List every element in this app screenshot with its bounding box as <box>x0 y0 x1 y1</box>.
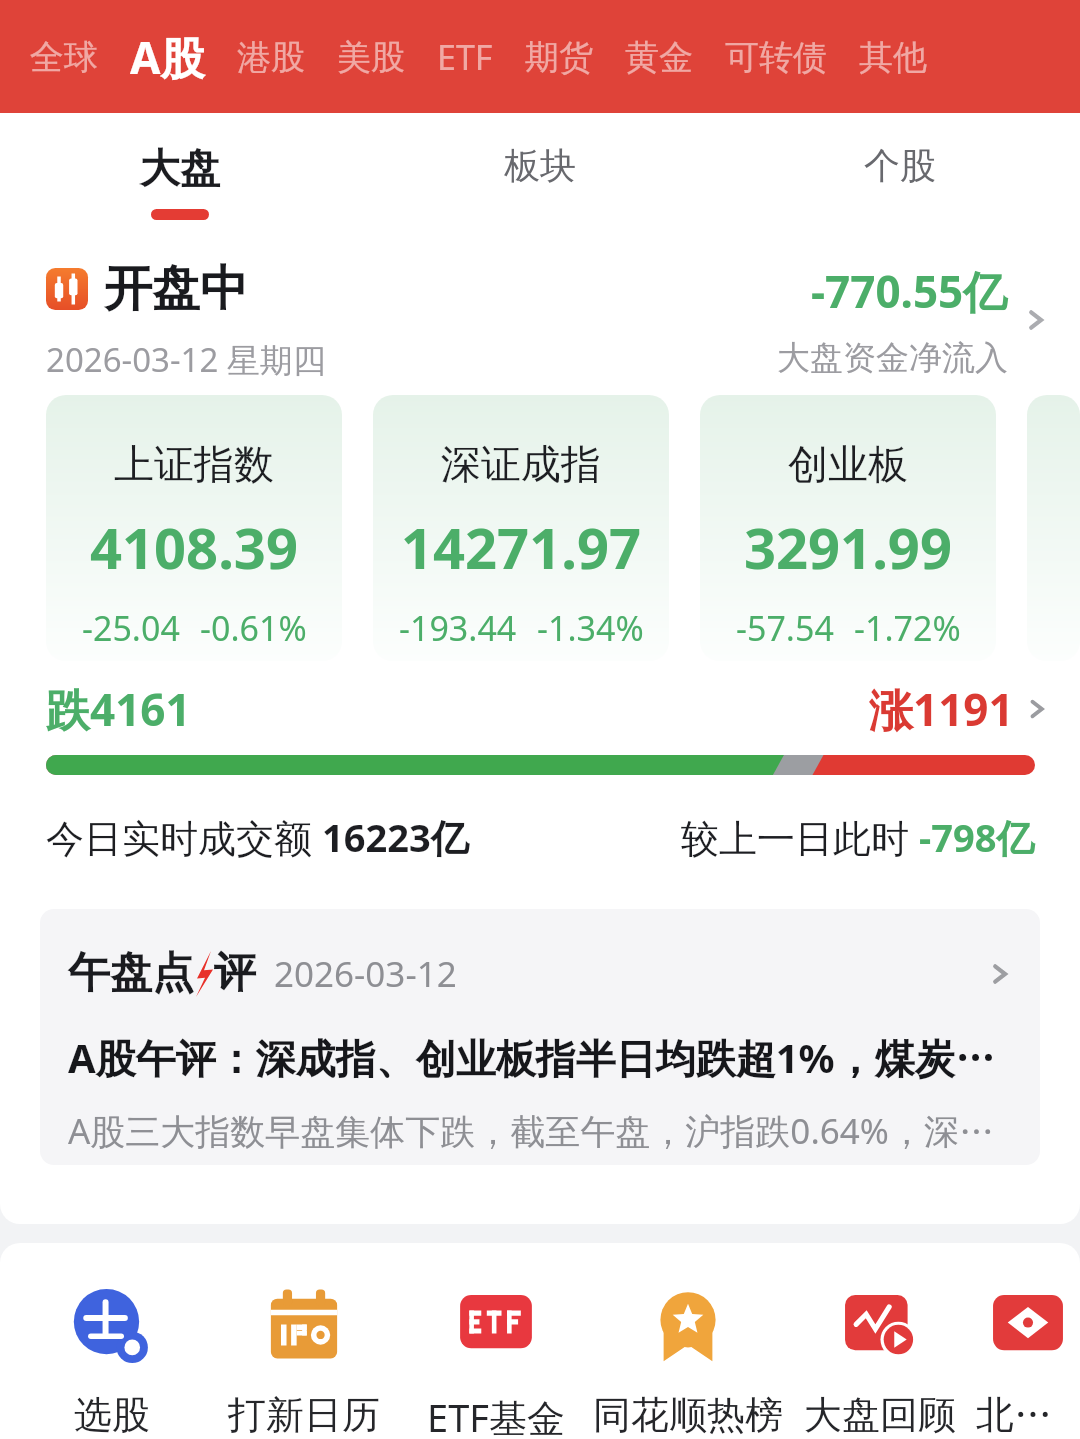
button[interactable]: 其他 <box>843 26 943 89</box>
staticText: A股三大指数早盘集体下跌，截至午盘，沪指跌0.64%，深成指… <box>68 1107 1020 1155</box>
button[interactable]: 北交所 <box>976 1283 1080 1439</box>
button[interactable]: 午盘点 <box>40 909 1040 1165</box>
staticText: 大盘资金净流入 <box>777 337 1008 379</box>
staticText: 港股 <box>237 36 305 79</box>
staticText: 跌4161 <box>46 679 191 739</box>
staticText: 16223亿 <box>322 811 469 863</box>
staticText: 3291.99 <box>744 509 952 585</box>
staticText: 其他 <box>859 36 927 79</box>
button[interactable]: 期货 <box>509 26 609 89</box>
staticText: 开盘中 <box>104 259 248 319</box>
button[interactable]: 上证指数 <box>46 395 342 661</box>
staticText: 2026-03-12 <box>274 950 457 998</box>
button[interactable]: 跌4161 <box>0 679 1080 739</box>
staticText: 板块 <box>504 143 576 188</box>
button[interactable]: 选股 <box>16 1283 208 1439</box>
staticText: ETF <box>437 34 493 80</box>
staticText: 黄金 <box>625 36 693 79</box>
staticText: 选股 <box>74 1391 150 1439</box>
staticText: -770.55亿 <box>811 261 1008 321</box>
staticText: A股午评：深成指、创业板指半日均跌超1%，煤炭、能… <box>68 1030 1020 1085</box>
button[interactable]: 创业板 <box>700 395 996 661</box>
button[interactable]: 板块 <box>360 113 720 245</box>
staticText: 创业板 <box>788 439 908 489</box>
button[interactable]: A股 <box>114 17 221 97</box>
staticText: 今日实时成交额 <box>46 811 322 863</box>
staticText: 可转债 <box>725 36 827 79</box>
staticText: 美股 <box>337 36 405 79</box>
button[interactable]: 港股 <box>221 26 321 89</box>
button[interactable]: 美股 <box>321 26 421 89</box>
button[interactable]: 开盘中 <box>0 245 1080 395</box>
staticText: 大盘回顾 <box>804 1391 956 1439</box>
button[interactable]: 同花顺热榜 <box>592 1283 784 1439</box>
staticText: 2026-03-12 星期四 <box>46 337 326 382</box>
staticText: 期货 <box>525 36 593 79</box>
button[interactable]: 全球 <box>14 26 114 89</box>
button[interactable]: 深证成指 <box>373 395 669 661</box>
staticText: -1.72% <box>854 605 961 651</box>
staticText: 同花顺热榜 <box>593 1391 783 1439</box>
staticText: 大盘 <box>140 143 220 193</box>
staticText: -25.04 <box>82 605 180 651</box>
staticText: 上证指数 <box>114 439 274 489</box>
button[interactable]: ETF基金 <box>400 1283 592 1439</box>
staticText: 个股 <box>864 143 936 188</box>
staticText: -0.61% <box>200 605 307 651</box>
button[interactable]: 黄金 <box>609 26 709 89</box>
button[interactable]: 打新日历 <box>208 1283 400 1439</box>
staticText: 深证成指 <box>441 439 601 489</box>
staticText: -798亿 <box>919 811 1035 863</box>
button[interactable] <box>1027 395 1080 661</box>
button[interactable]: ETF <box>421 24 509 90</box>
staticText: A股 <box>130 27 205 87</box>
staticText: 涨1191 <box>869 679 1014 739</box>
button[interactable]: 可转债 <box>709 26 843 89</box>
staticText: -57.54 <box>736 605 834 651</box>
staticText: 14271.97 <box>401 509 641 585</box>
button[interactable]: 大盘回顾 <box>784 1283 976 1439</box>
button[interactable]: 大盘 <box>0 113 360 245</box>
staticText: 全球 <box>30 36 98 79</box>
staticText: 北交所 <box>976 1391 1080 1439</box>
staticText: 评 <box>214 947 256 1000</box>
staticText: ETF基金 <box>427 1391 565 1439</box>
staticText: -193.44 <box>399 605 517 651</box>
staticText: 午盘点 <box>68 947 194 1000</box>
staticText: 4108.39 <box>90 509 298 585</box>
staticText: 打新日历 <box>228 1391 380 1439</box>
staticText: -1.34% <box>537 605 644 651</box>
staticText: 较上一日此时 <box>681 811 919 863</box>
button[interactable]: 个股 <box>720 113 1080 245</box>
